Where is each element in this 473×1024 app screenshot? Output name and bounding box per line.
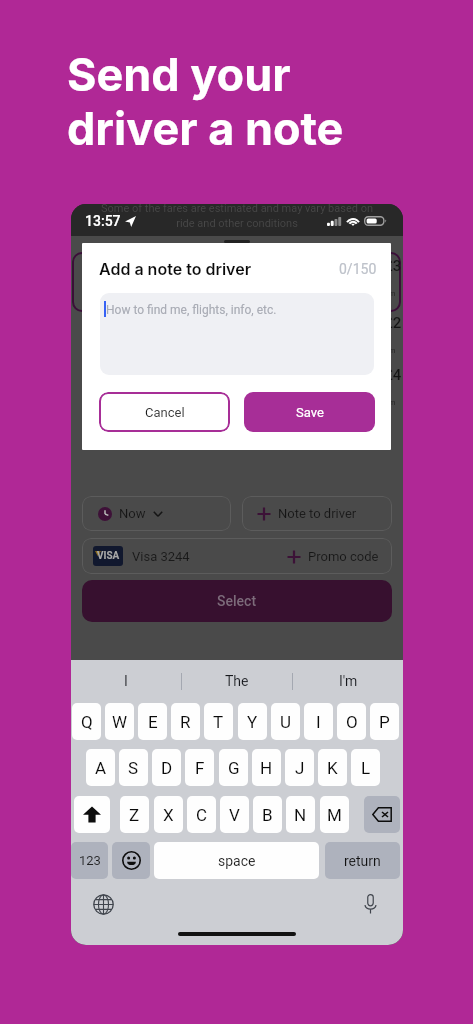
staticText: L: [361, 758, 371, 778]
button[interactable]: Shift: [74, 796, 110, 833]
staticText: 13:57: [85, 213, 121, 229]
staticText: VISA: [97, 550, 120, 562]
staticText: Q: [81, 712, 93, 732]
staticText: K: [327, 758, 338, 778]
staticText: Some of the fares are estimated and may …: [71, 204, 403, 230]
staticText: The: [225, 673, 249, 689]
button[interactable]: Note to driver: [242, 496, 392, 531]
button[interactable]: M: [320, 796, 349, 833]
staticText: X: [163, 805, 174, 825]
staticText: Note to driver: [278, 506, 357, 521]
button[interactable]: Change keyboard: [89, 890, 117, 918]
button[interactable]: A: [86, 749, 115, 786]
staticText: Send your: [67, 47, 291, 101]
staticText: I: [316, 712, 321, 732]
button[interactable]: U: [271, 703, 300, 740]
button[interactable]: I: [71, 660, 181, 702]
staticText: £2: [384, 314, 402, 332]
button[interactable]: The: [182, 660, 292, 702]
staticText: £5: [384, 335, 394, 344]
staticText: 5m: [384, 289, 396, 298]
button[interactable]: X: [154, 796, 183, 833]
staticText: Now: [119, 506, 146, 521]
button[interactable]: Cancel: [99, 392, 230, 432]
staticText: How to find me, flights, info, etc.: [106, 303, 277, 317]
staticText: £5: [384, 387, 394, 396]
button[interactable]: 123: [71, 842, 108, 879]
button[interactable]: T: [204, 703, 233, 740]
staticText: 123: [79, 853, 101, 868]
staticText: £5: [384, 278, 394, 287]
button[interactable]: N: [286, 796, 315, 833]
button[interactable]: Y: [238, 703, 267, 740]
button[interactable]: I'm: [293, 660, 403, 702]
button[interactable]: P: [370, 703, 399, 740]
staticText: H: [260, 758, 273, 778]
staticText: £3: [384, 257, 402, 275]
staticText: C: [196, 805, 208, 825]
button[interactable]: E: [138, 703, 167, 740]
staticText: £4: [384, 366, 402, 384]
button[interactable]: D: [152, 749, 181, 786]
button[interactable]: H: [252, 749, 281, 786]
button[interactable]: I: [304, 703, 333, 740]
staticText: B: [262, 805, 273, 825]
button[interactable]: Emoji: [112, 842, 150, 879]
button[interactable]: C: [187, 796, 216, 833]
staticText: U: [280, 712, 292, 732]
button[interactable]: B: [253, 796, 282, 833]
button[interactable]: Select: [82, 580, 392, 622]
button[interactable]: VISA: [93, 546, 287, 566]
staticText: 5m: [384, 398, 396, 407]
button[interactable]: Backspace: [364, 796, 400, 833]
staticText: 0/150: [339, 261, 377, 277]
staticText: Add a note to driver: [99, 259, 251, 278]
staticText: I: [124, 673, 128, 689]
staticText: Y: [247, 712, 258, 732]
button[interactable]: Q: [72, 703, 101, 740]
button[interactable]: O: [337, 703, 366, 740]
staticText: R: [180, 712, 191, 732]
button[interactable]: W: [105, 703, 134, 740]
button[interactable]: How to find me, flights, info, etc.: [100, 293, 374, 375]
staticText: Cancel: [145, 405, 185, 420]
staticText: A: [95, 758, 107, 778]
staticText: Save: [296, 405, 324, 420]
button[interactable]: Promo code: [287, 549, 379, 564]
button[interactable]: L: [351, 749, 380, 786]
staticText: W: [112, 712, 128, 732]
staticText: Visa 3244: [132, 549, 190, 564]
button[interactable]: F: [185, 749, 214, 786]
staticText: F: [195, 758, 205, 778]
staticText: V: [229, 805, 240, 825]
button[interactable]: Save: [244, 392, 375, 432]
staticText: M: [327, 805, 342, 825]
button[interactable]: Z: [120, 796, 149, 833]
staticText: J: [295, 758, 305, 778]
staticText: O: [346, 712, 358, 732]
staticText: Z: [129, 805, 140, 825]
staticText: N: [294, 805, 307, 825]
staticText: Promo code: [308, 549, 379, 564]
staticText: driver a note: [67, 101, 344, 155]
button[interactable]: V: [220, 796, 249, 833]
staticText: Select: [217, 593, 257, 609]
button[interactable]: K: [318, 749, 347, 786]
button[interactable]: space: [154, 842, 319, 879]
button[interactable]: return: [325, 842, 400, 879]
button[interactable]: S: [119, 749, 148, 786]
staticText: return: [344, 853, 381, 869]
staticText: P: [379, 712, 390, 732]
staticText: space: [218, 853, 256, 869]
staticText: I'm: [339, 673, 358, 689]
staticText: S: [128, 758, 139, 778]
button[interactable]: G: [219, 749, 248, 786]
button[interactable]: R: [171, 703, 200, 740]
staticText: 5m: [384, 346, 396, 355]
button[interactable]: Now: [82, 496, 231, 531]
staticText: D: [161, 758, 173, 778]
staticText: G: [228, 758, 240, 778]
button[interactable]: Dictate: [356, 890, 384, 918]
button[interactable]: J: [285, 749, 314, 786]
staticText: T: [213, 712, 224, 732]
